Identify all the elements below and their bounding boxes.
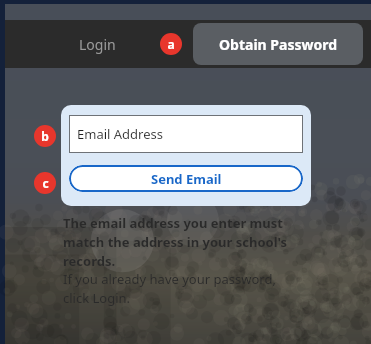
staticText: Email Address — [77, 125, 163, 143]
button[interactable]: Send Email — [69, 165, 303, 192]
button[interactable]: Login — [5, 20, 189, 68]
other: Annotation a — [160, 33, 182, 55]
staticText: c — [42, 175, 49, 191]
other: Annotation c — [34, 172, 56, 194]
button[interactable]: Email Address — [69, 115, 303, 153]
other: Annotation b — [34, 125, 56, 147]
staticText: a — [167, 36, 175, 52]
staticText: b — [41, 128, 49, 144]
staticText: The email address you enter must match t… — [63, 214, 303, 270]
button[interactable]: Obtain Password — [193, 23, 363, 65]
staticText: If you already have your password, click… — [63, 270, 303, 307]
staticText: Login — [79, 35, 116, 54]
staticText: Send Email — [151, 170, 222, 188]
staticText: Obtain Password — [219, 35, 338, 54]
